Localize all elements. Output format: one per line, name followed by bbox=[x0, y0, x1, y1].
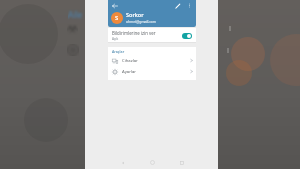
button[interactable]: Edit bbox=[173, 1, 182, 10]
staticText: Ayarlar bbox=[122, 69, 190, 75]
staticText: Açık bbox=[112, 37, 119, 41]
button[interactable]: More options bbox=[185, 1, 194, 10]
staticText: Bildirimlerine izin ver bbox=[112, 30, 156, 36]
staticText: Cihazlar bbox=[122, 58, 190, 64]
button[interactable]: Cihazlar bbox=[108, 55, 196, 66]
button[interactable]: Ayarlar bbox=[108, 66, 196, 77]
staticText: S bbox=[115, 14, 119, 22]
staticText: Aile bbox=[68, 9, 83, 20]
button[interactable]: Allow notifications toggle, on bbox=[182, 33, 192, 39]
staticText: ahmet@gmail.com bbox=[126, 19, 157, 24]
staticText: Araçlar bbox=[112, 49, 125, 54]
button[interactable]: Bildirimlerine izin ver bbox=[108, 28, 196, 43]
button[interactable]: S bbox=[111, 11, 192, 24]
button[interactable]: Back bbox=[110, 1, 119, 10]
button[interactable]: Recent apps bbox=[167, 156, 196, 169]
staticText: Sorkor bbox=[126, 11, 144, 18]
